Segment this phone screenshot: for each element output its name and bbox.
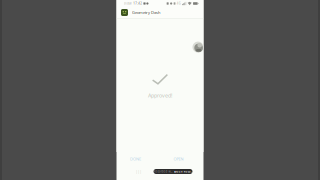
button[interactable]: Recent apps (135, 169, 141, 174)
staticText: Install (124, 2, 132, 5)
button[interactable]: DONE (130, 156, 141, 162)
staticText: DONE (130, 156, 141, 162)
staticText: ||| (135, 169, 141, 174)
staticText: Approved! (148, 92, 172, 99)
staticText: Geometry Dash (132, 10, 160, 15)
staticText: OPEN (173, 156, 183, 162)
button[interactable]: Floating assistant (192, 42, 203, 53)
button[interactable]: Geometry Dash (116, 7, 203, 18)
staticText: 17:42 (133, 2, 142, 5)
staticText: Recorded with (153, 170, 172, 173)
staticText: Screen Recorder (174, 170, 193, 173)
button[interactable]: OPEN (173, 156, 183, 162)
staticText: 4G (177, 2, 181, 5)
